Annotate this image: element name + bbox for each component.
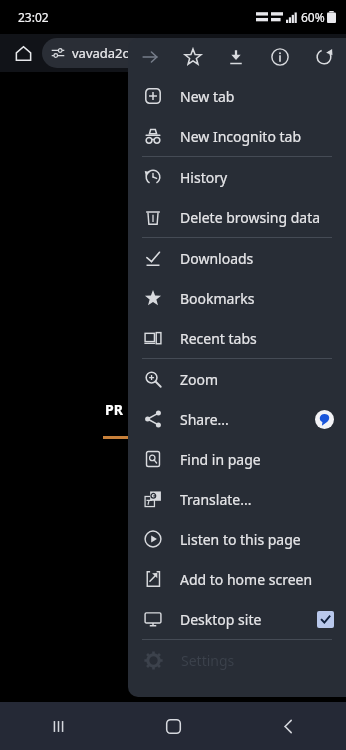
- staticText: Translate...: [180, 490, 252, 509]
- button[interactable]: New tab: [128, 76, 346, 116]
- button[interactable]: Forward: [128, 38, 171, 76]
- button[interactable]: Zoom: [128, 359, 346, 399]
- button[interactable]: vavada2c: [42, 38, 192, 68]
- button[interactable]: Home: [6, 36, 40, 70]
- button[interactable]: History: [128, 157, 346, 197]
- button[interactable]: Find in page: [128, 439, 346, 479]
- button[interactable]: Back: [231, 702, 346, 750]
- button[interactable]: Add to home screen: [128, 559, 346, 599]
- staticText: Desktop site: [180, 610, 262, 629]
- button[interactable]: Download: [214, 38, 258, 76]
- button[interactable]: Bookmark: [171, 38, 214, 76]
- staticText: Share...: [180, 410, 229, 429]
- staticText: Recent tabs: [180, 329, 257, 348]
- button[interactable]: Delete browsing data: [128, 197, 346, 237]
- staticText: Bookmarks: [180, 289, 255, 308]
- staticText: Downloads: [180, 249, 254, 268]
- button[interactable]: Desktop site: [128, 599, 346, 639]
- staticText: Zoom: [180, 370, 219, 389]
- staticText: Listen to this page: [180, 530, 301, 549]
- button[interactable]: Reload: [302, 38, 346, 76]
- staticText: History: [180, 168, 228, 187]
- button[interactable]: Translate...: [128, 479, 346, 519]
- button[interactable]: Share...: [128, 399, 346, 439]
- button[interactable]: Recents: [0, 702, 116, 750]
- staticText: Settings: [181, 651, 235, 670]
- staticText: PR: [105, 400, 123, 419]
- button[interactable]: Bookmarks: [128, 278, 346, 318]
- button[interactable]: Listen to this page: [128, 519, 346, 559]
- staticText: 23:02: [18, 9, 49, 25]
- button[interactable]: New Incognito tab: [128, 116, 346, 156]
- button[interactable]: Downloads: [128, 238, 346, 278]
- staticText: New Incognito tab: [180, 127, 302, 146]
- staticText: 60%: [301, 9, 325, 25]
- staticText: Delete browsing data: [180, 208, 321, 227]
- button[interactable]: Recent tabs: [128, 318, 346, 358]
- staticText: vavada2c: [72, 44, 129, 62]
- staticText: Find in page: [180, 450, 261, 469]
- button[interactable]: Page info: [258, 38, 302, 76]
- staticText: Add to home screen: [180, 570, 313, 589]
- button[interactable]: Home: [116, 702, 231, 750]
- staticText: New tab: [180, 87, 235, 106]
